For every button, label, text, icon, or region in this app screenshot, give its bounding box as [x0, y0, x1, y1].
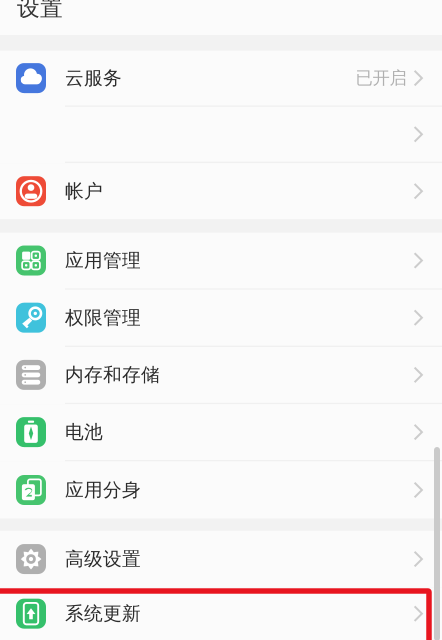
staticText: 云服务	[65, 67, 122, 89]
button[interactable]: 系统更新	[0, 587, 442, 640]
staticText: 内存和存储	[65, 363, 160, 386]
button[interactable]: 应用管理	[0, 233, 442, 290]
staticText: 已开启	[355, 67, 406, 89]
staticText: 电池	[65, 421, 103, 443]
staticText: 设置	[17, 0, 63, 22]
staticText: 应用管理	[65, 249, 141, 272]
staticText: 帐户	[65, 180, 103, 203]
staticText: 高级设置	[65, 548, 141, 570]
button[interactable]: 帐户	[0, 163, 442, 219]
button[interactable]: 内存和存储	[0, 347, 442, 404]
staticText: 应用分身	[65, 478, 141, 501]
button[interactable]: 电池	[0, 404, 442, 461]
button[interactable]: 权限管理	[0, 290, 442, 347]
button[interactable]: 高级设置	[0, 531, 442, 587]
button[interactable]: 应用分身	[0, 461, 442, 519]
staticText: 权限管理	[65, 306, 141, 329]
staticText: 系统更新	[65, 602, 141, 625]
button[interactable]: 云服务	[0, 51, 442, 107]
